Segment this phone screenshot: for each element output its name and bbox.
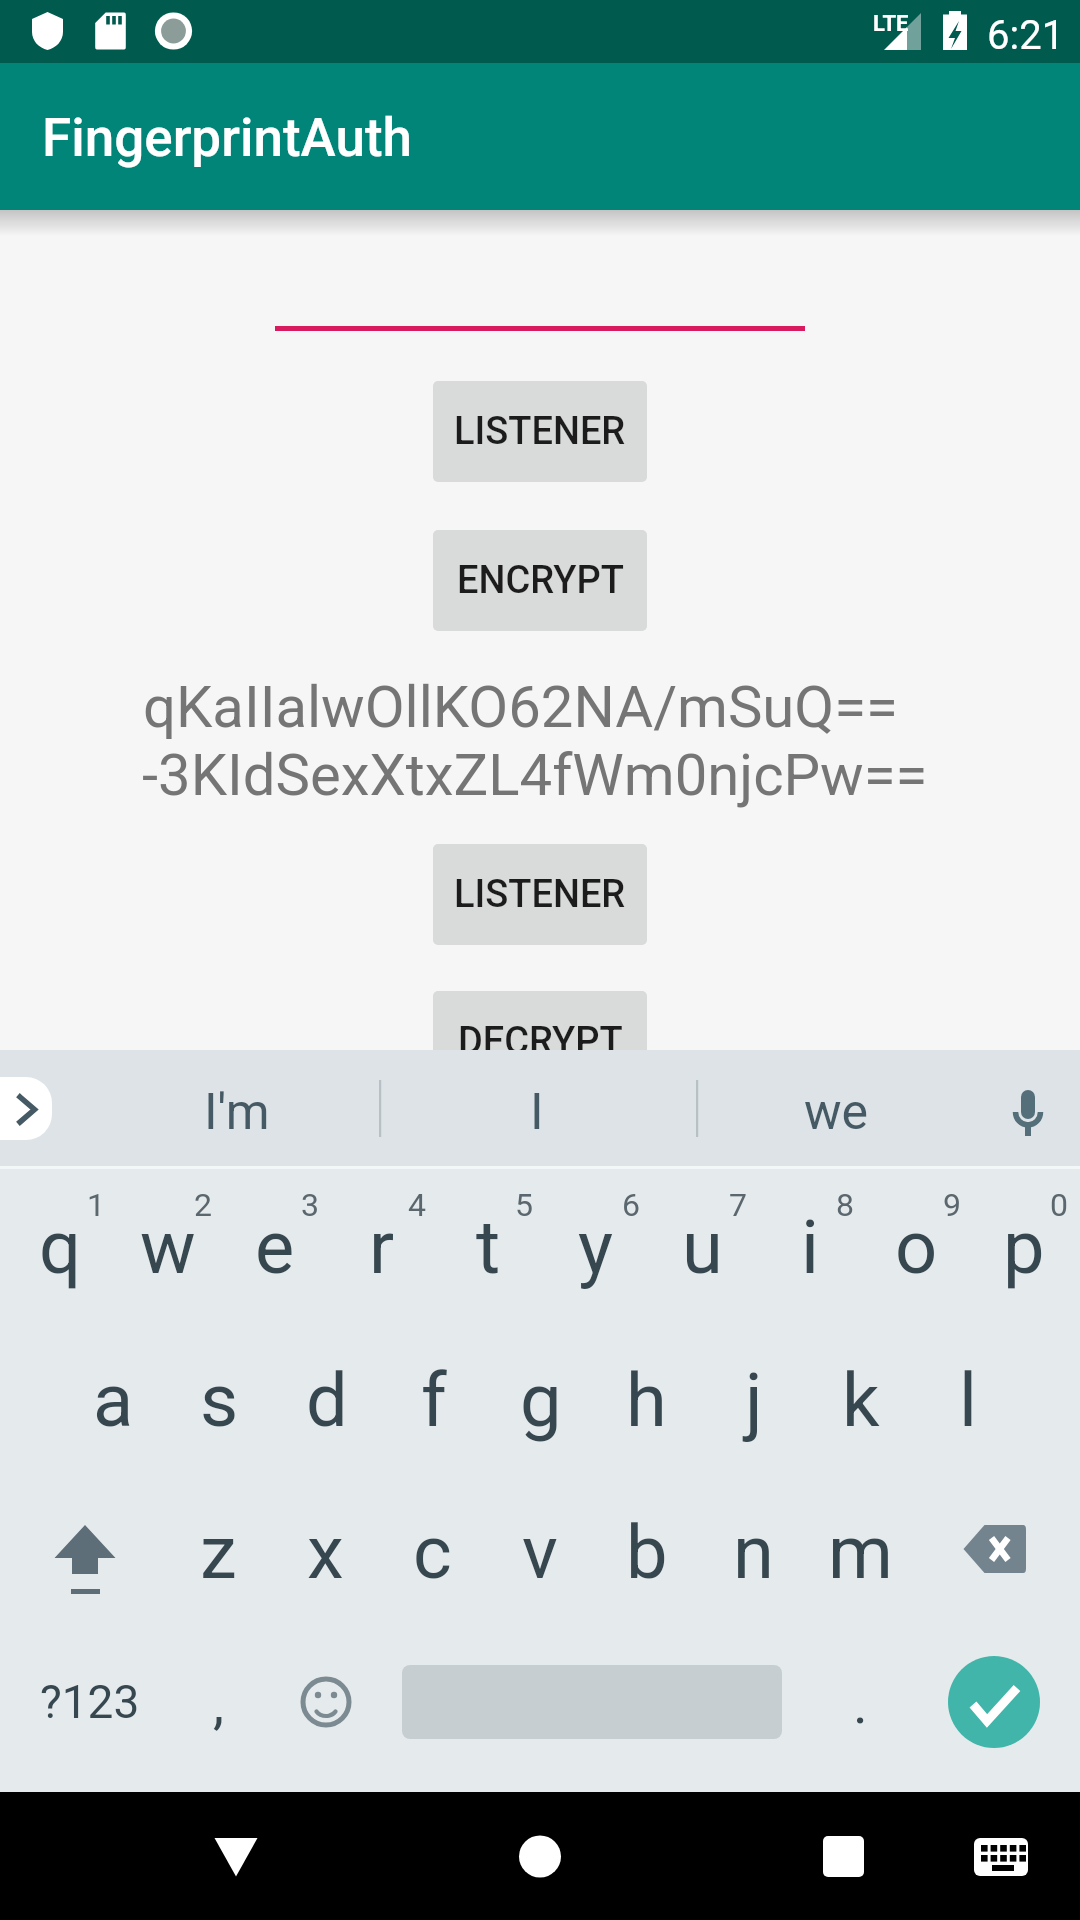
button[interactable]: d <box>273 1324 380 1474</box>
staticText: z <box>200 1509 237 1596</box>
button[interactable]: h <box>593 1324 700 1474</box>
staticText: s <box>200 1357 239 1444</box>
button[interactable]: y <box>542 1171 649 1321</box>
button[interactable]: Home <box>450 1792 630 1920</box>
button[interactable]: j <box>700 1324 807 1474</box>
staticText: DECRYPT <box>458 1019 623 1064</box>
staticText: 2 <box>194 1186 212 1224</box>
button[interactable]: p <box>970 1171 1077 1321</box>
button[interactable]: n <box>700 1476 807 1626</box>
button[interactable]: Voice input <box>980 1050 1076 1166</box>
button[interactable]: DECRYPT <box>433 991 647 1092</box>
staticText: y <box>578 1204 614 1291</box>
staticText: 6 <box>622 1186 640 1224</box>
button[interactable]: I'm <box>107 1050 367 1166</box>
staticText: x <box>307 1509 344 1596</box>
staticText: I'm <box>204 1083 270 1142</box>
button[interactable]: LISTENER <box>433 844 647 945</box>
staticText: m <box>828 1509 893 1596</box>
button[interactable]: b <box>593 1476 700 1626</box>
staticText: qKaIIalwOllKO62NA/mSuQ== <box>143 673 898 741</box>
button[interactable]: Switch keyboard <box>931 1792 1071 1920</box>
staticText: we <box>804 1083 869 1142</box>
staticText: v <box>522 1509 558 1596</box>
button[interactable]: ?123 <box>0 1627 175 1777</box>
button[interactable]: Back <box>146 1792 326 1920</box>
button[interactable]: ENCRYPT <box>433 530 647 631</box>
staticText: FingerprintAuth <box>42 107 412 169</box>
button[interactable]: i <box>756 1171 863 1321</box>
staticText: q <box>39 1204 82 1291</box>
button[interactable]: I <box>407 1050 667 1166</box>
button[interactable]: z <box>165 1476 272 1626</box>
staticText: LISTENER <box>454 409 626 454</box>
staticText: LISTENER <box>454 872 626 917</box>
button[interactable]: c <box>379 1476 486 1626</box>
button[interactable]: l <box>914 1324 1021 1474</box>
staticText: ?123 <box>40 1675 140 1729</box>
staticText: LTE <box>873 11 909 37</box>
staticText: 0 <box>1050 1186 1068 1224</box>
button[interactable]: m <box>807 1476 914 1626</box>
staticText: 1 <box>87 1186 105 1224</box>
staticText: g <box>520 1357 562 1444</box>
button[interactable]: g <box>487 1324 594 1474</box>
button[interactable]: we <box>706 1050 966 1166</box>
staticText: n <box>733 1509 774 1596</box>
staticText: t <box>476 1204 501 1291</box>
button[interactable]: Recents <box>754 1792 934 1920</box>
staticText: . <box>853 1671 868 1737</box>
button[interactable]: w <box>114 1171 221 1321</box>
staticText: e <box>255 1204 295 1291</box>
staticText: 6:21 <box>987 12 1065 59</box>
button[interactable]: a <box>60 1324 167 1474</box>
button[interactable]: v <box>486 1476 593 1626</box>
button[interactable]: Enter <box>948 1656 1040 1748</box>
button[interactable]: Backspace <box>930 1476 1060 1626</box>
button[interactable]: LISTENER <box>433 381 647 482</box>
button[interactable]: . <box>805 1627 915 1777</box>
button[interactable]: t <box>435 1171 542 1321</box>
button[interactable]: Text input field <box>275 235 805 331</box>
button[interactable]: More suggestions <box>0 1077 52 1140</box>
staticText: 5 <box>515 1186 533 1224</box>
staticText: c <box>413 1509 452 1596</box>
staticText: 4 <box>408 1186 426 1224</box>
button[interactable]: , <box>164 1627 274 1777</box>
button[interactable]: o <box>863 1171 970 1321</box>
button[interactable]: f <box>380 1324 487 1474</box>
staticText: l <box>959 1357 977 1444</box>
staticText: d <box>306 1357 348 1444</box>
staticText: p <box>1003 1204 1045 1291</box>
staticText: w <box>140 1204 196 1291</box>
staticText: b <box>626 1509 668 1596</box>
staticText: ENCRYPT <box>457 558 624 603</box>
button[interactable]: Shift <box>10 1476 160 1626</box>
staticText: u <box>682 1204 723 1291</box>
staticText: I <box>530 1083 544 1142</box>
staticText: 3 <box>301 1186 319 1224</box>
staticText: f <box>421 1357 447 1444</box>
staticText: j <box>745 1357 763 1444</box>
button[interactable]: r <box>328 1171 435 1321</box>
staticText: , <box>213 1671 225 1737</box>
button[interactable]: q <box>7 1171 114 1321</box>
button[interactable]: x <box>272 1476 379 1626</box>
staticText: -3KIdSexXtxZL4fWm0njcPw== <box>142 741 928 809</box>
staticText: h <box>626 1357 667 1444</box>
staticText: k <box>842 1357 880 1444</box>
staticText: 7 <box>729 1186 747 1224</box>
staticText: a <box>93 1357 134 1444</box>
button[interactable]: s <box>166 1324 273 1474</box>
staticText: r <box>369 1204 395 1291</box>
staticText: 8 <box>836 1186 854 1224</box>
staticText: 9 <box>943 1186 961 1224</box>
staticText: i <box>801 1204 819 1291</box>
button[interactable]: k <box>807 1324 914 1474</box>
staticText: o <box>895 1204 938 1291</box>
button[interactable]: Emoji <box>271 1627 381 1777</box>
button[interactable]: u <box>649 1171 756 1321</box>
button[interactable]: e <box>221 1171 328 1321</box>
